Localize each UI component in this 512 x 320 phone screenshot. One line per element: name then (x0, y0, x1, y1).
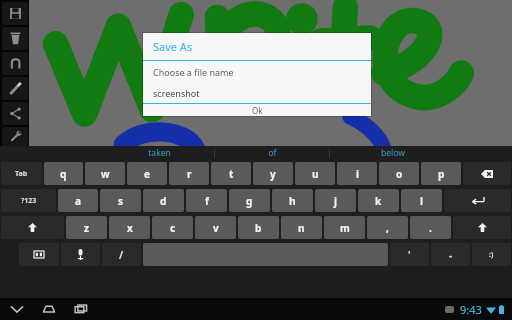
staticText: h (289, 194, 296, 208)
staticText: f (205, 194, 209, 208)
staticText: Choose a file name (153, 66, 234, 78)
button[interactable]: ' (390, 243, 429, 266)
button[interactable]: . (410, 216, 451, 239)
button[interactable]: g (229, 189, 270, 212)
button[interactable]: u (295, 162, 335, 185)
staticText: d (160, 194, 167, 208)
staticText: j (334, 194, 337, 208)
staticText: x (127, 221, 133, 235)
staticText: v (213, 221, 219, 235)
button[interactable]: Voice input (61, 243, 100, 266)
staticText: a (75, 194, 81, 208)
staticText: :) (489, 250, 494, 260)
button[interactable]: s (100, 189, 141, 212)
staticText: k (375, 194, 382, 208)
staticText: ' (408, 248, 411, 262)
staticText: t (229, 167, 234, 181)
button[interactable]: , (367, 216, 408, 239)
staticText: , (386, 221, 389, 235)
button[interactable]: ?123 (1, 189, 56, 212)
button[interactable]: Shift (1, 216, 64, 239)
button[interactable]: Ok (143, 104, 371, 116)
button[interactable]: w (85, 162, 125, 185)
staticText: o (396, 167, 403, 181)
button[interactable]: b (238, 216, 279, 239)
button[interactable]: Undo (2, 52, 28, 75)
button[interactable]: Share (2, 102, 28, 125)
button[interactable]: n (281, 216, 322, 239)
button[interactable]: of (215, 146, 329, 160)
button[interactable]: Switch keyboard (19, 243, 59, 266)
staticText: Ok (252, 105, 263, 116)
staticText: w (101, 167, 110, 181)
button[interactable]: t (211, 162, 251, 185)
button[interactable]: Recent apps (72, 300, 90, 318)
button[interactable]: z (66, 216, 107, 239)
staticText: screenshot (153, 87, 200, 99)
button[interactable]: l (401, 189, 442, 212)
button[interactable]: r (169, 162, 209, 185)
button[interactable]: p (421, 162, 461, 185)
button[interactable]: Draw (2, 77, 28, 100)
staticText: s (118, 194, 124, 208)
button[interactable]: Settings (2, 127, 28, 146)
staticText: r (187, 167, 192, 181)
button[interactable]: :) (472, 243, 511, 266)
button[interactable]: Backspace (463, 162, 511, 185)
staticText: below (381, 147, 405, 159)
staticText: b (255, 221, 262, 235)
button[interactable]: k (358, 189, 399, 212)
staticText: p (438, 167, 445, 181)
button[interactable]: Shift right (453, 216, 511, 239)
button[interactable]: taken (105, 146, 214, 160)
staticText: ?123 (21, 196, 37, 206)
staticText: - (449, 248, 453, 262)
button[interactable]: Enter (444, 189, 511, 212)
staticText: c (170, 221, 176, 235)
staticText: i (356, 167, 359, 181)
staticText: g (246, 194, 253, 208)
staticText: Tab (15, 169, 28, 179)
staticText: l (420, 194, 423, 208)
staticText: q (60, 167, 67, 181)
button[interactable]: y (253, 162, 293, 185)
staticText: e (144, 167, 150, 181)
staticText: z (84, 221, 89, 235)
staticText: n (298, 221, 305, 235)
button[interactable]: Tab (1, 162, 42, 185)
button[interactable]: f (186, 189, 227, 212)
staticText: / (119, 248, 124, 262)
staticText: u (312, 167, 319, 181)
button[interactable]: x (109, 216, 150, 239)
button[interactable]: d (143, 189, 184, 212)
button[interactable]: Delete (2, 27, 28, 50)
staticText: . (429, 221, 432, 235)
staticText: taken (148, 147, 171, 159)
staticText: 9:43 (460, 302, 482, 317)
button[interactable]: c (152, 216, 193, 239)
staticText: of (268, 147, 277, 159)
button[interactable]: below (330, 146, 455, 160)
button[interactable]: Save (2, 2, 28, 25)
button[interactable]: i (337, 162, 377, 185)
button[interactable]: o (379, 162, 419, 185)
button[interactable]: - (431, 243, 470, 266)
button[interactable]: m (324, 216, 365, 239)
staticText: m (340, 221, 350, 235)
staticText: y (270, 167, 276, 181)
button[interactable]: j (315, 189, 356, 212)
button[interactable]: Back (8, 300, 26, 318)
button[interactable]: v (195, 216, 236, 239)
button[interactable]: a (58, 189, 98, 212)
button[interactable]: e (127, 162, 167, 185)
button[interactable]: q (44, 162, 83, 185)
button[interactable]: Home (40, 300, 58, 318)
staticText: Save As (153, 39, 193, 54)
button[interactable]: / (102, 243, 141, 266)
button[interactable]: h (272, 189, 313, 212)
